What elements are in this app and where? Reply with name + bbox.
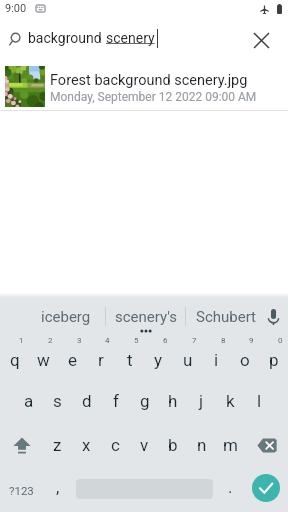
staticText: 9 <box>249 336 254 345</box>
button[interactable]: Clear search <box>246 25 276 55</box>
staticText: b <box>168 435 178 455</box>
button[interactable]: s <box>43 379 72 423</box>
button[interactable]: n <box>187 423 216 467</box>
staticText: . <box>228 477 233 497</box>
staticText: 9:00 <box>5 2 27 15</box>
staticText: e <box>68 350 78 370</box>
staticText: 2 <box>48 336 53 345</box>
button[interactable]: c <box>101 423 130 467</box>
button[interactable]: j <box>187 379 216 423</box>
staticText: 4 <box>105 336 110 345</box>
staticText: w <box>37 350 50 370</box>
staticText: k <box>226 391 235 411</box>
button[interactable]: h <box>158 379 187 423</box>
staticText: j <box>199 391 204 411</box>
button[interactable]: y <box>144 335 173 379</box>
staticText: scenery <box>106 30 155 46</box>
button[interactable]: iceberg <box>26 298 106 334</box>
staticText: m <box>223 435 238 455</box>
staticText: z <box>53 435 62 455</box>
button[interactable]: x <box>72 423 101 467</box>
staticText: scenery's <box>115 308 177 326</box>
staticText: background <box>28 30 106 46</box>
button[interactable]: Voice input <box>257 298 288 334</box>
staticText: , <box>56 477 60 497</box>
staticText: v <box>140 435 149 455</box>
button[interactable]: q <box>0 335 29 379</box>
staticText: Forest background scenery.jpg <box>50 72 248 89</box>
staticText: 6 <box>163 336 168 345</box>
staticText: u <box>183 350 193 370</box>
staticText: p <box>269 350 279 370</box>
staticText: g <box>140 391 150 411</box>
button[interactable]: m <box>216 423 245 467</box>
button[interactable]: a <box>14 379 43 423</box>
staticText: 5 <box>134 336 139 345</box>
button[interactable]: i <box>202 335 231 379</box>
button[interactable]: l <box>245 379 274 423</box>
button[interactable]: , <box>43 467 72 511</box>
staticText: f <box>113 391 119 411</box>
staticText: l <box>257 391 262 411</box>
staticText: y <box>154 350 163 370</box>
button[interactable]: v <box>130 423 159 467</box>
staticText: t <box>127 350 133 370</box>
button[interactable]: u <box>173 335 202 379</box>
button[interactable]: w <box>29 335 58 379</box>
staticText: iceberg <box>41 308 91 326</box>
staticText: a <box>24 391 34 411</box>
staticText: x <box>82 435 91 455</box>
button[interactable]: p <box>259 335 288 379</box>
button[interactable]: Backspace <box>245 423 288 467</box>
button[interactable]: Space <box>72 467 216 511</box>
staticText: 7 <box>192 336 197 345</box>
staticText: d <box>82 391 92 411</box>
staticText: c <box>111 435 120 455</box>
button[interactable]: g <box>130 379 159 423</box>
staticText: Schubert <box>196 308 257 326</box>
button[interactable]: d <box>72 379 101 423</box>
button[interactable]: scenery's <box>106 298 186 334</box>
staticText: 0 <box>278 336 283 345</box>
button[interactable]: Forest background scenery.jpg <box>0 62 288 111</box>
staticText: i <box>214 350 219 370</box>
button[interactable]: ?123 <box>0 467 43 511</box>
staticText: 3 <box>77 336 82 345</box>
button[interactable]: k <box>216 379 245 423</box>
button[interactable]: b <box>158 423 187 467</box>
staticText: o <box>240 350 250 370</box>
staticText: q <box>10 350 20 370</box>
staticText: s <box>53 391 62 411</box>
button[interactable]: f <box>101 379 130 423</box>
button[interactable]: t <box>115 335 144 379</box>
button[interactable]: r <box>86 335 115 379</box>
button[interactable]: z <box>43 423 72 467</box>
staticText: 1 <box>19 336 24 345</box>
button[interactable]: Schubert <box>186 298 266 334</box>
staticText: n <box>197 435 207 455</box>
button[interactable]: e <box>58 335 87 379</box>
button[interactable]: o <box>230 335 259 379</box>
staticText: Monday, September 12 2022 09:00 AM <box>50 90 257 104</box>
button[interactable]: Enter <box>245 467 288 511</box>
staticText: r <box>98 350 104 370</box>
button[interactable]: Shift <box>0 423 43 467</box>
staticText: ?123 <box>9 484 34 497</box>
staticText: h <box>168 391 178 411</box>
staticText: 8 <box>221 336 226 345</box>
button[interactable]: . <box>216 467 245 511</box>
